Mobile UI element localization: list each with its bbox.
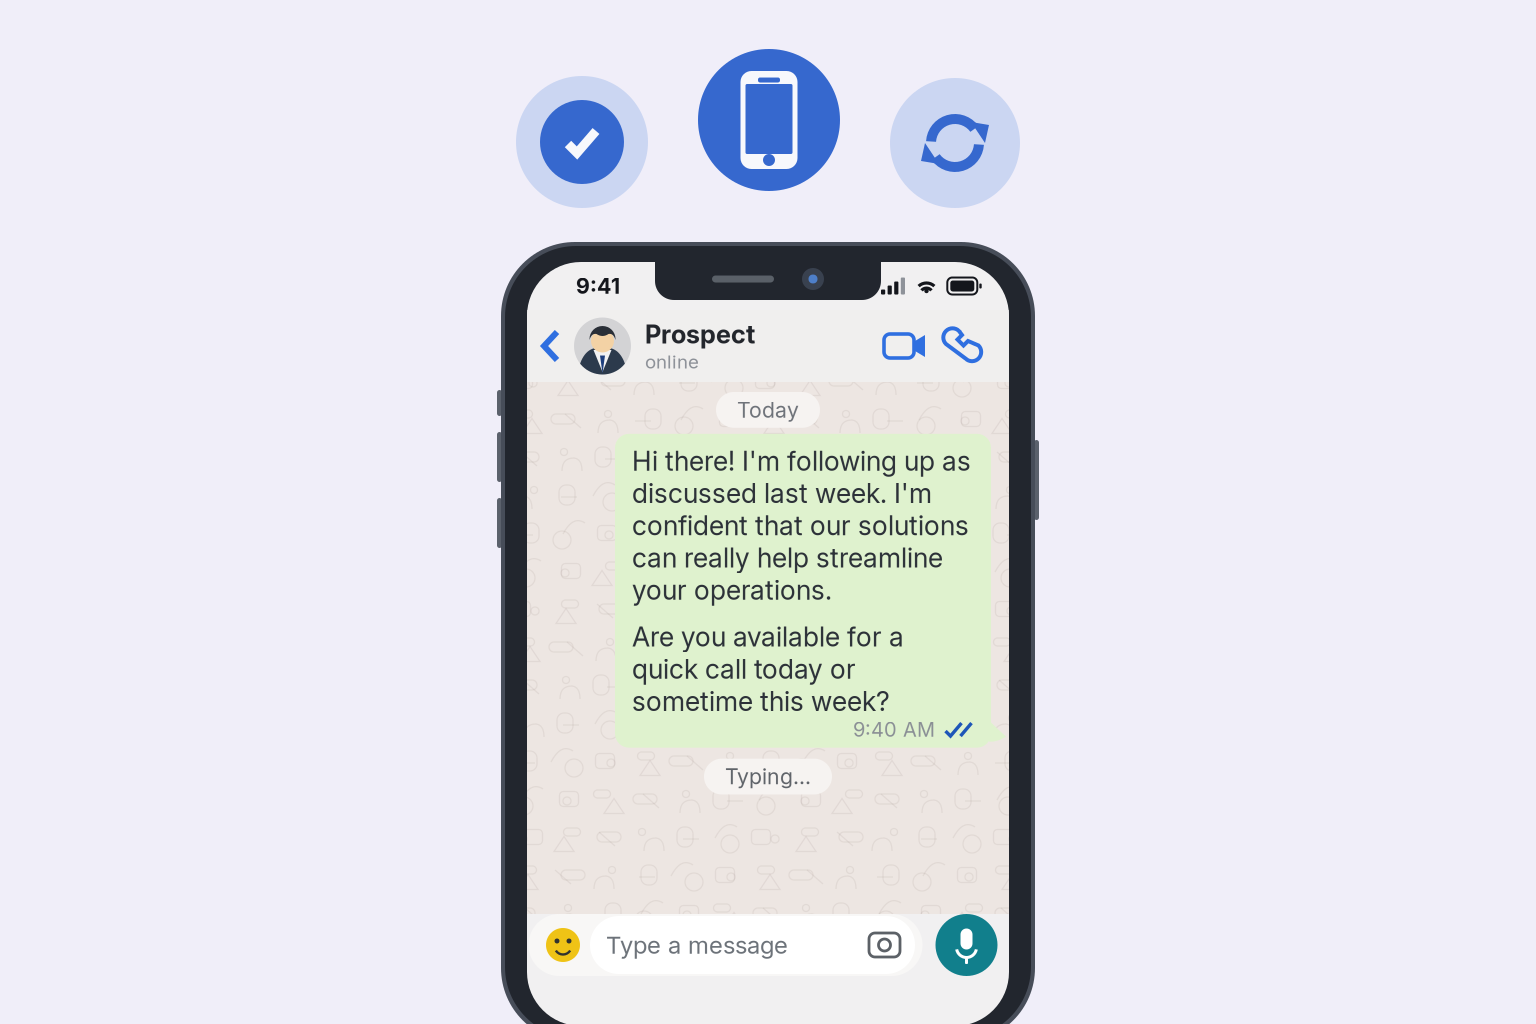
button[interactable]: Record voice message <box>935 914 997 976</box>
staticText: Today <box>737 397 799 423</box>
button[interactable]: Delivered <box>516 49 648 225</box>
staticText: Type a message <box>606 930 788 959</box>
staticText: Hi there! I'm following up as discussed … <box>632 445 971 606</box>
button[interactable]: Back <box>527 316 574 376</box>
button[interactable]: Sync <box>890 49 1020 225</box>
button[interactable]: Voice call <box>931 316 991 376</box>
button[interactable]: Mobile <box>698 49 840 225</box>
staticText: 9:41 <box>576 273 620 299</box>
staticText: online <box>645 350 699 373</box>
staticText: Typing... <box>725 764 811 789</box>
staticText: Prospect <box>645 319 755 350</box>
button[interactable]: Prospect <box>574 317 755 374</box>
button[interactable]: Emoji <box>546 928 580 962</box>
button[interactable]: Video call <box>867 316 931 376</box>
staticText: 9:40 AM <box>853 717 935 742</box>
staticText: Are you available for a quick call today… <box>632 621 904 717</box>
button[interactable]: Type a message <box>590 916 915 974</box>
